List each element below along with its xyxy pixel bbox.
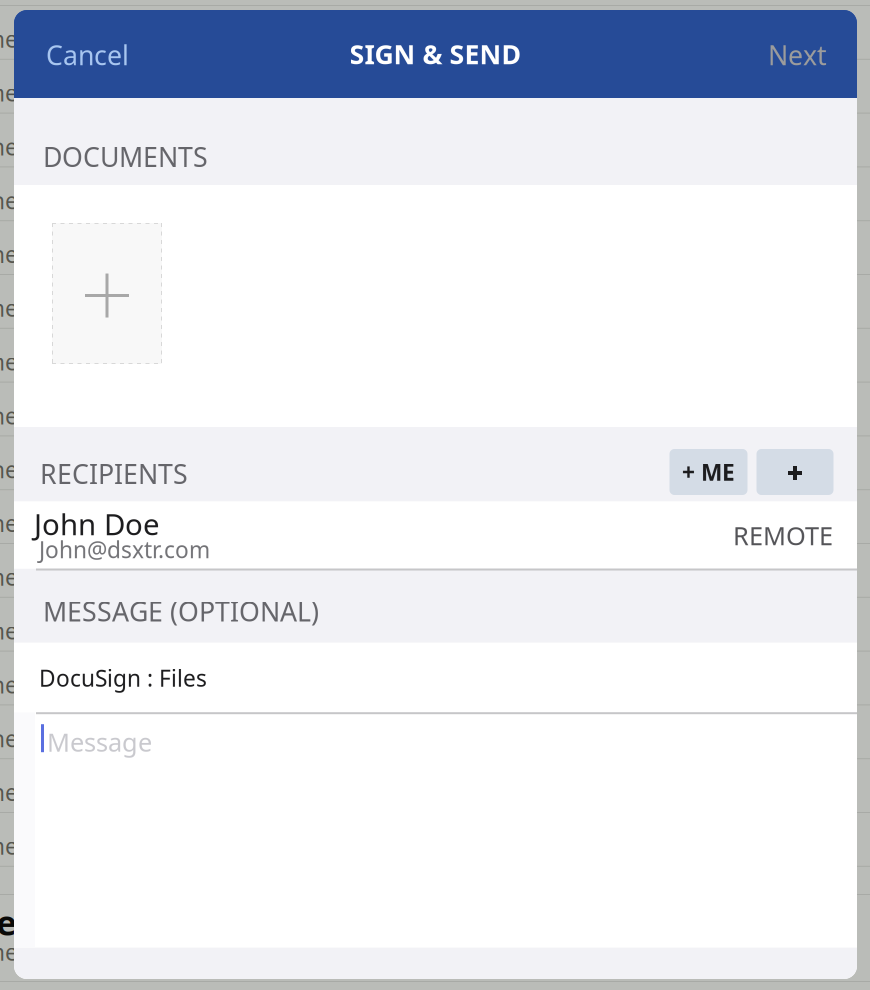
staticText: MESSAGE (OPTIONAL) (43, 593, 319, 629)
staticText: ne (0, 831, 18, 861)
staticText: ne (0, 454, 18, 484)
staticText: REMOTE (733, 519, 833, 552)
staticText: ne (0, 508, 18, 538)
staticText: Message (47, 725, 152, 759)
staticText: ne (0, 185, 18, 215)
button[interactable]: John Doe (14, 501, 857, 568)
staticText: ne (0, 777, 18, 807)
staticText: + ME (682, 457, 735, 487)
staticText: ne (0, 723, 18, 753)
staticText: Cancel (46, 37, 129, 73)
staticText: ne (0, 562, 18, 592)
staticText: ne (0, 131, 18, 162)
staticText: DocuSign : Files (39, 663, 207, 693)
staticText: SIGN & SEND (349, 36, 521, 72)
staticText: DOCUMENTS (43, 139, 208, 174)
button[interactable]: Cancel (14, 10, 172, 98)
staticText: e (0, 899, 17, 945)
staticText: John Doe (34, 504, 160, 543)
staticText: ne (0, 239, 18, 269)
button[interactable]: + ME (669, 449, 747, 495)
button[interactable]: DocuSign : Files (14, 643, 857, 712)
staticText: RECIPIENTS (40, 456, 188, 491)
staticText: ne (0, 669, 18, 700)
staticText: ne (0, 347, 18, 377)
staticText: ne (0, 937, 18, 967)
staticText: ne (0, 78, 18, 108)
staticText: John@dsxtr.com (39, 534, 210, 565)
staticText: ne (0, 293, 18, 323)
button[interactable]: Add recipient (756, 449, 833, 495)
staticText: ne (0, 24, 18, 54)
button[interactable]: Next (727, 10, 857, 98)
button[interactable]: Message (14, 712, 857, 948)
button[interactable]: Add document (52, 223, 162, 364)
staticText: ne (0, 616, 18, 646)
staticText: Next (768, 37, 827, 73)
staticText: ne (0, 400, 18, 431)
